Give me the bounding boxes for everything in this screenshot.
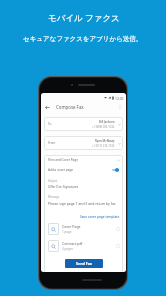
button[interactable]: Save cover page template	[80, 215, 120, 219]
staticText: Bill Jackson	[99, 120, 115, 124]
button[interactable]: Add a cover page	[48, 165, 120, 174]
staticText: Message	[48, 195, 60, 199]
staticText: Subject	[48, 179, 58, 183]
staticText: To	[48, 122, 52, 126]
button[interactable]: Cover Page	[48, 223, 120, 235]
staticText: Offer Doc Signatures	[48, 185, 79, 189]
staticText: Add a cover page	[48, 168, 74, 172]
staticText: 3 pages	[62, 247, 73, 251]
button[interactable]: Files and Cover Page	[48, 155, 120, 165]
staticText: +1 (888) 000-1234	[92, 125, 115, 129]
staticText: Contract.pdf	[62, 241, 83, 246]
staticText: Files and Cover Page	[48, 158, 79, 162]
staticText: From	[48, 141, 56, 145]
staticText: Cover Page	[62, 224, 81, 229]
staticText: 1 page	[62, 230, 72, 234]
staticText: +1 (619) 218-1234	[92, 144, 115, 148]
button[interactable]: To	[44, 117, 123, 131]
staticText: Please sign page 1 and 3 and return by f…	[48, 201, 116, 206]
staticText: Send Fax	[76, 261, 92, 266]
button[interactable]: Back	[43, 103, 51, 111]
staticText: セキュアなファクスをアプリから送信。	[23, 35, 143, 43]
button[interactable]: Send Fax	[65, 259, 103, 268]
staticText: Compose Fax	[56, 104, 84, 110]
button[interactable]: More options	[116, 103, 123, 110]
staticText: モバイル ファクス	[48, 12, 120, 24]
staticText: 12:30	[115, 96, 124, 100]
button[interactable]: Contract.pdf	[48, 240, 120, 252]
button[interactable]: From	[44, 136, 123, 150]
staticText: Ryan McNasty	[95, 139, 115, 143]
